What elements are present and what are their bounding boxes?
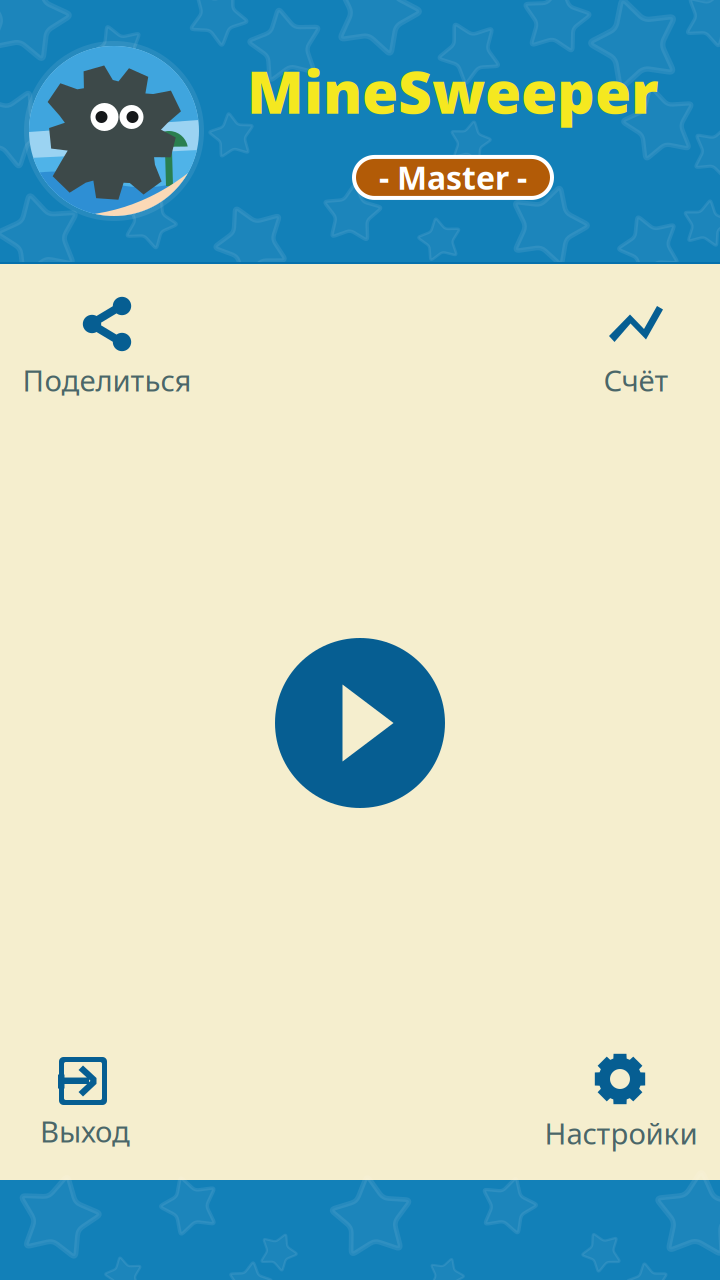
staticText: Настройки xyxy=(544,1113,697,1152)
staticText: - Master - xyxy=(379,156,527,199)
staticText: Счёт xyxy=(603,360,668,399)
button[interactable]: Выход xyxy=(40,1051,130,1146)
staticText: MineSweeper xyxy=(247,52,659,130)
button[interactable]: Настройки xyxy=(547,1051,695,1148)
button[interactable]: Play xyxy=(275,638,445,808)
button[interactable]: Поделиться xyxy=(25,297,189,395)
staticText: Поделиться xyxy=(22,360,191,399)
button[interactable]: Счёт xyxy=(603,297,669,395)
staticText: Выход xyxy=(40,1111,130,1150)
